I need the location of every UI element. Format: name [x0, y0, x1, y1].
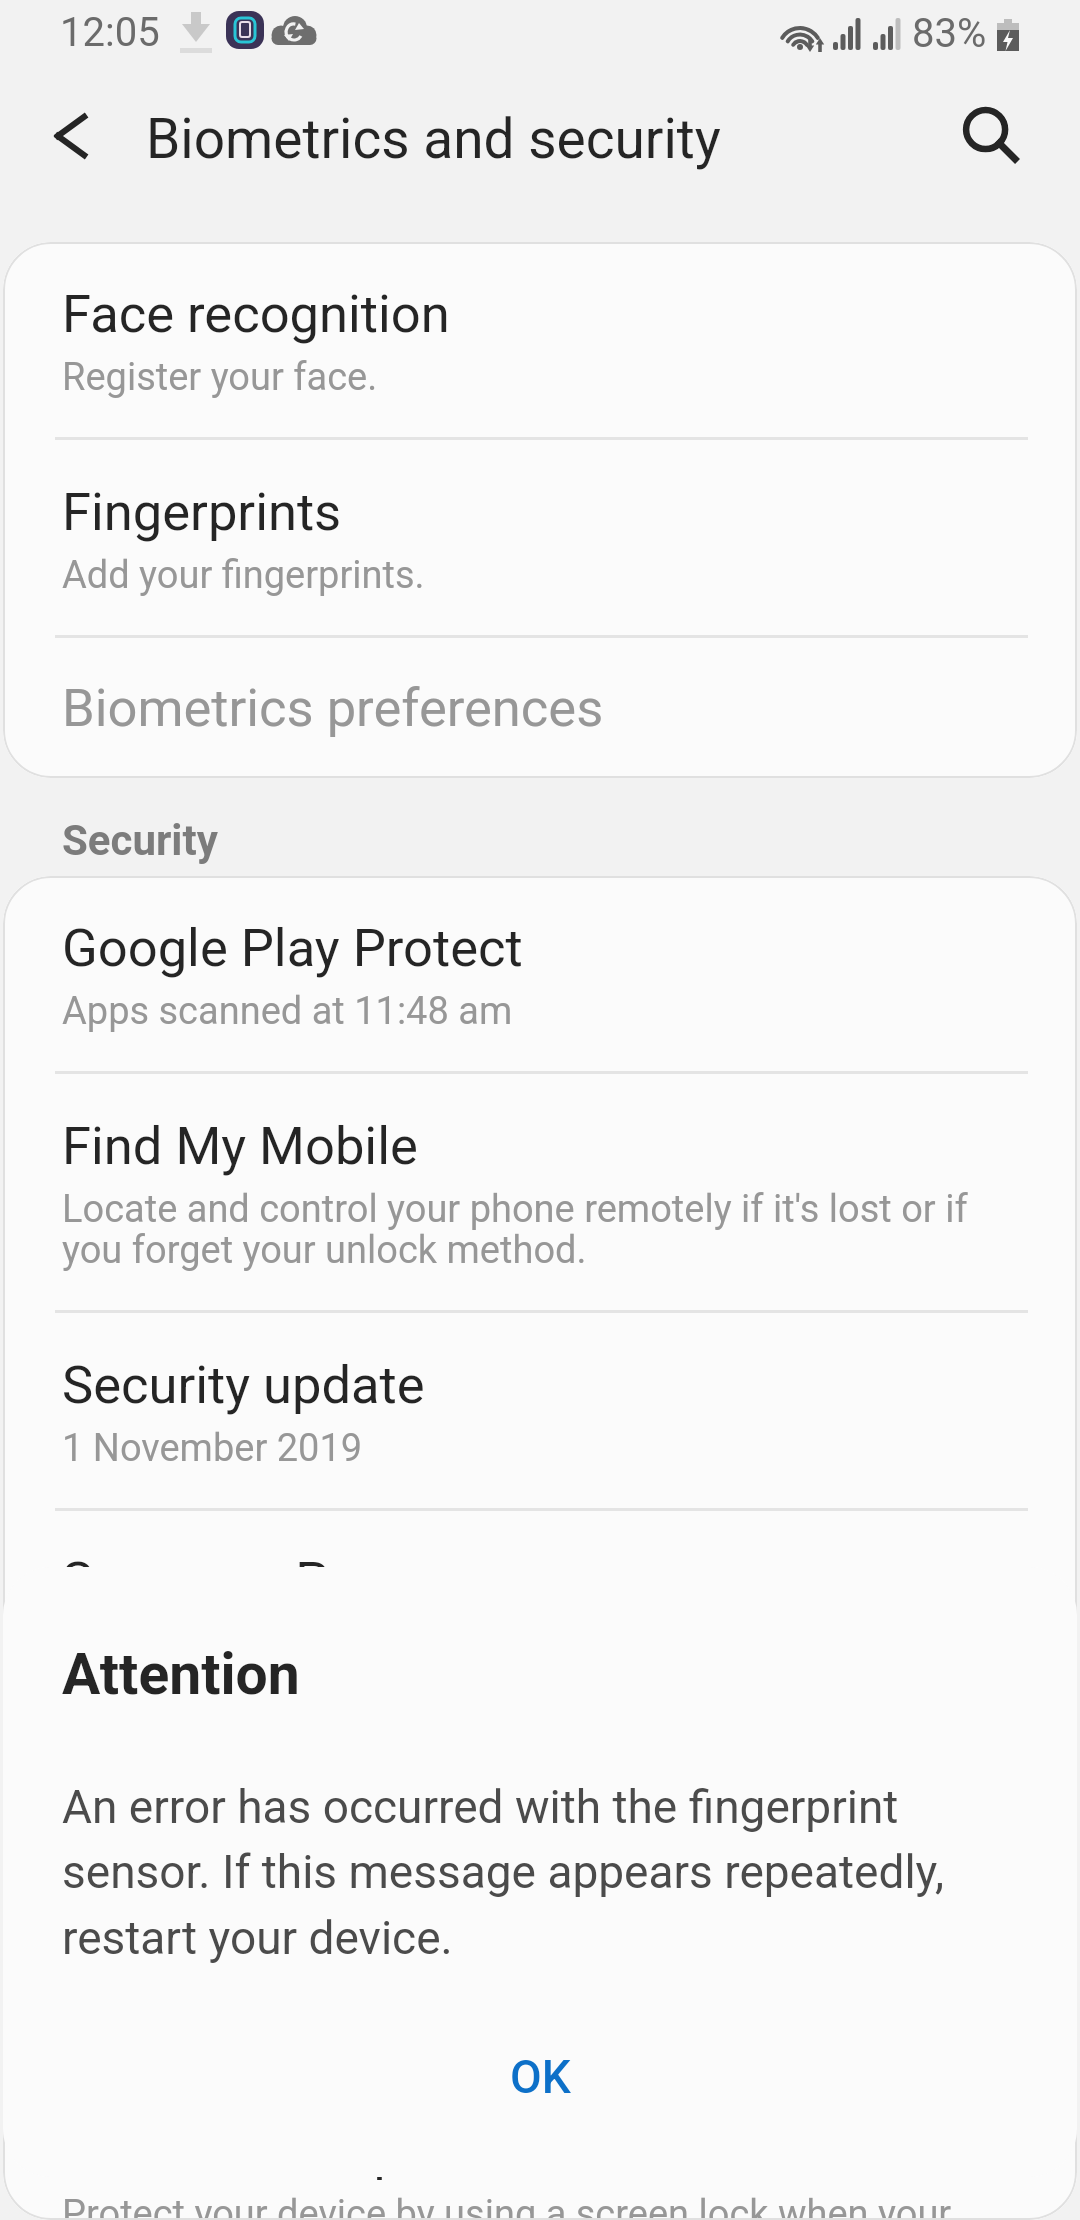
staticText: Security [62, 816, 218, 865]
button[interactable]: Biometrics preferences [3, 638, 1077, 778]
button[interactable]: Face recognition [3, 242, 1077, 437]
button[interactable]: Other security settings [3, 1938, 1077, 2076]
button[interactable]: Search [942, 86, 1042, 186]
staticText: Encrypt SD card [62, 1835, 433, 1897]
staticText: Samsung Pass [62, 1550, 411, 1612]
button[interactable]: Google Play Protect [3, 876, 1077, 1071]
staticText: 12:05 [60, 9, 160, 56]
button[interactable]: Back [21, 86, 121, 186]
staticText: Biometrics preferences [62, 677, 604, 739]
button[interactable]: Find My Mobile [3, 1074, 1077, 1310]
staticText: Fingerprints [62, 481, 342, 543]
staticText: Add your fingerprints. [62, 553, 425, 598]
button[interactable]: Samsung Pass [3, 1511, 1077, 1651]
staticText: Attention [62, 1641, 300, 1708]
button[interactable]: Encrypt SD card [3, 1797, 1077, 1935]
staticText: Find My Mobile [62, 1115, 418, 1177]
button[interactable]: Security update [3, 1313, 1077, 1508]
staticText: Locate and control your phone remotely i… [62, 1187, 1025, 1273]
staticText: Google Play Protect [62, 917, 523, 979]
staticText: 83% [912, 10, 987, 57]
staticText: An error has occurred with the fingerpri… [62, 1780, 1018, 1965]
button[interactable]: Secure Folder [3, 1654, 1077, 1794]
staticText: Security update [62, 1354, 425, 1416]
staticText: Register your face. [62, 355, 378, 400]
staticText: 1 November 2019 [62, 1426, 363, 1471]
staticText: OK [510, 2050, 571, 2104]
staticText: Protect your device by using a screen lo… [62, 2192, 952, 2220]
staticText: Secure Folder [62, 1693, 383, 1755]
staticText: Apps scanned at 11:48 am [62, 989, 513, 1034]
button[interactable]: Fingerprints [3, 440, 1077, 635]
button[interactable]: OK [450, 2050, 631, 2104]
staticText: Secure startup [62, 2120, 404, 2182]
staticText: Biometrics and security [146, 107, 721, 171]
staticText: Face recognition [62, 283, 450, 345]
button[interactable]: Secure startup [3, 2079, 1077, 2220]
